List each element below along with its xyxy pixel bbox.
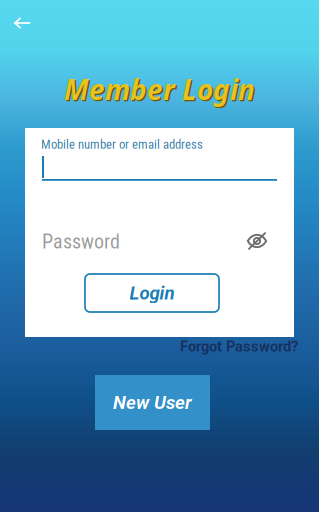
button[interactable]: Forgot Password? [180, 338, 298, 355]
staticText: Password [42, 230, 120, 253]
button[interactable]: New User [95, 375, 210, 430]
staticText: Member Login [66, 71, 257, 109]
staticText: New User [113, 392, 192, 413]
staticText: Login [129, 282, 174, 304]
staticText: Mobile number or email address [41, 137, 203, 152]
staticText: Forgot Password? [180, 338, 298, 355]
button[interactable]: Login [85, 274, 219, 312]
button[interactable]: Show password [241, 226, 273, 256]
button[interactable]: Back [4, 7, 41, 39]
staticText: Member Login [64, 70, 255, 108]
